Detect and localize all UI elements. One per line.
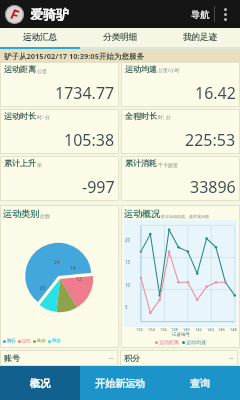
staticText: 142 — [195, 327, 202, 332]
button[interactable]: 积分 — [120, 350, 238, 366]
staticText: 公里/小时 — [158, 67, 180, 74]
staticText: 累计消耗 — [125, 158, 157, 168]
button[interactable]: 累计消耗 — [125, 158, 236, 199]
staticText: 跑步 — [52, 338, 61, 344]
staticText: 多次运动距离、速度状况图 — [161, 214, 209, 219]
staticText: 驴子从2015/02/17 10:39:05开始为您服务 — [4, 51, 144, 61]
button[interactable]: 查询 — [160, 366, 240, 400]
staticText: 导航 — [191, 9, 209, 20]
staticText: 运动距离 — [159, 339, 179, 345]
staticText: 时: 分 — [158, 114, 171, 121]
staticText: 记录编号 — [172, 332, 190, 338]
staticText: 24 — [54, 259, 60, 266]
staticText: 1734.77 — [55, 82, 115, 104]
button[interactable]: 概况 — [0, 366, 80, 400]
staticText: 米 — [37, 162, 42, 168]
button[interactable]: 全程时长 — [125, 111, 236, 152]
staticText: 账号 — [4, 353, 20, 363]
staticText: 146 — [218, 327, 225, 332]
staticText: 148 — [230, 327, 237, 332]
button[interactable]: 运动概况 — [124, 208, 237, 345]
staticText: 105:38 — [64, 129, 115, 151]
staticText: 运动汇总 — [23, 32, 57, 43]
staticText: 5 — [125, 304, 128, 310]
staticText: 14 — [70, 265, 76, 272]
button[interactable]: 开始新运动 — [80, 366, 160, 400]
staticText: 225:53 — [185, 129, 236, 151]
staticText: GPS — [22, 338, 31, 344]
staticText: 140 — [183, 327, 190, 332]
staticText: 骑行 — [7, 338, 16, 344]
button[interactable]: 运动汇总 — [0, 28, 80, 47]
staticText: -- — [229, 353, 234, 363]
staticText: -997 — [82, 176, 115, 198]
button[interactable]: 分类明细 — [80, 28, 160, 47]
staticText: 时: 分 — [37, 114, 50, 121]
staticText: 开始新运动 — [95, 377, 145, 390]
staticText: 20 — [125, 237, 131, 243]
button[interactable]: 累计上升 — [4, 158, 115, 199]
staticText: 运动距离 — [4, 64, 36, 74]
staticText: 概况 — [30, 377, 50, 390]
staticText: 我的足迹 — [183, 32, 217, 43]
staticText: 运动均速 — [186, 339, 206, 345]
staticText: 132 — [136, 327, 143, 332]
staticText: 15 — [125, 259, 131, 265]
other: App icon — [5, 5, 24, 24]
staticText: 积分 — [124, 353, 140, 363]
staticText: 运动概况 — [124, 208, 160, 219]
staticText: 全程时长 — [125, 111, 157, 121]
staticText: 12 — [76, 276, 82, 283]
staticText: 次数 — [40, 213, 50, 219]
staticText: 分类明细 — [103, 32, 137, 43]
staticText: 徒步 — [37, 338, 46, 344]
staticText: 138 — [171, 327, 178, 332]
button[interactable]: 账号 — [0, 350, 118, 366]
staticText: 查询 — [190, 377, 210, 390]
button[interactable]: 运动类别 — [3, 208, 116, 345]
staticText: 136 — [160, 327, 167, 332]
button[interactable]: 运动距离 — [4, 64, 115, 105]
staticText: 144 — [207, 327, 214, 332]
staticText: 运动类别 — [3, 208, 39, 219]
button[interactable]: More options — [215, 0, 235, 28]
staticText: 134 — [148, 327, 155, 332]
staticText: 运动均速 — [125, 64, 157, 74]
staticText: 公里 — [37, 68, 47, 74]
button[interactable]: 运动均速 — [125, 64, 236, 105]
button[interactable]: 运动时长 — [4, 111, 115, 152]
staticText: 爱骑驴 — [30, 6, 69, 22]
staticText: 千卡路里 — [158, 162, 178, 168]
staticText: -- — [109, 353, 114, 363]
staticText: 累计上升 — [4, 158, 36, 168]
staticText: 10 — [125, 282, 131, 288]
staticText: 16.42 — [195, 82, 236, 104]
button[interactable]: 我的足迹 — [160, 28, 240, 47]
button[interactable]: 导航 — [186, 5, 214, 24]
staticText: 33896 — [190, 176, 236, 198]
staticText: 85 — [40, 285, 46, 292]
staticText: 运动时长 — [4, 111, 36, 121]
